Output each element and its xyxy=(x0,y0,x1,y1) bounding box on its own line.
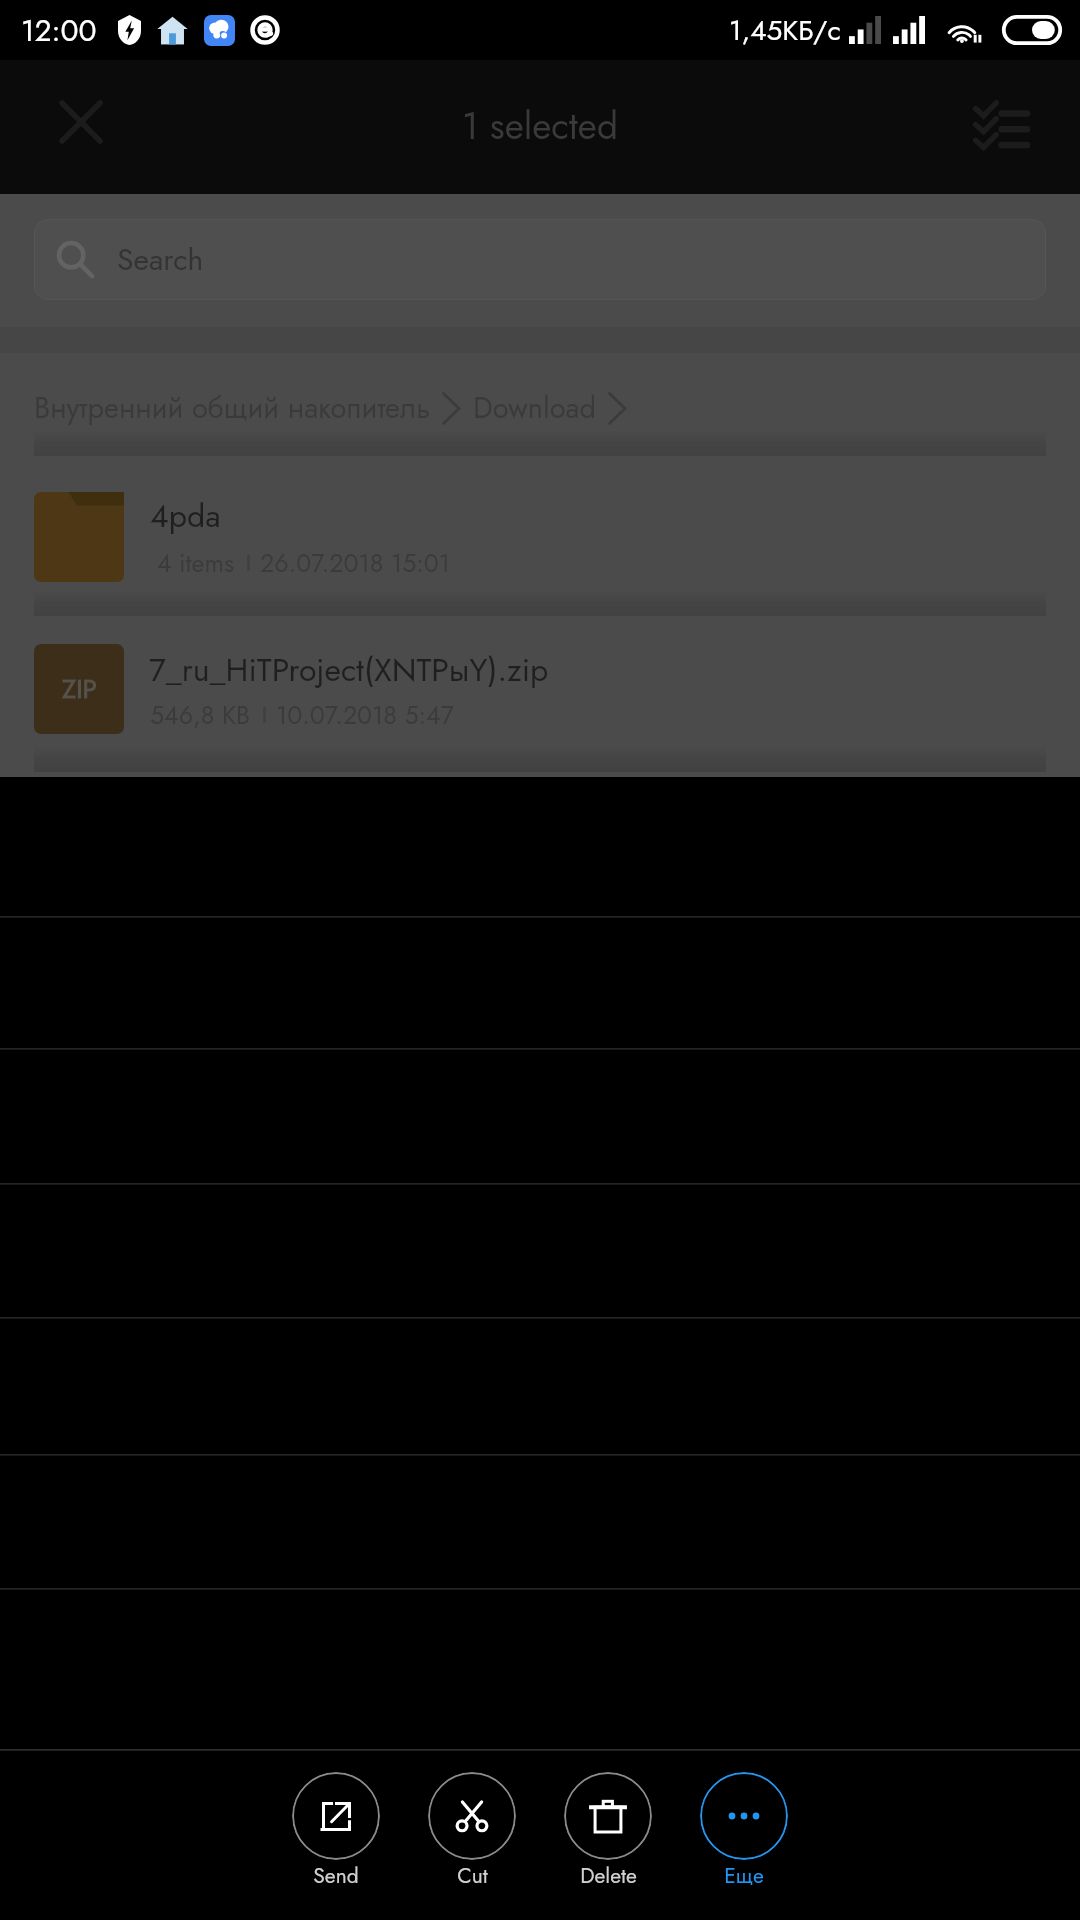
staticText: 546,8 KB xyxy=(150,697,251,733)
staticText: ZIP xyxy=(62,670,97,708)
staticText: Send xyxy=(313,1861,359,1891)
staticText: 10.07.2018 5:47 xyxy=(276,697,454,733)
button[interactable]: Cut xyxy=(404,1772,540,1891)
staticText: 7_ru_HiTProject(XNTPыY).zip xyxy=(149,647,549,693)
staticText: Download xyxy=(473,387,597,429)
button[interactable]: ZIP xyxy=(0,628,1080,748)
staticText: Delete xyxy=(580,1861,637,1891)
staticText: 1 selected xyxy=(462,99,618,152)
button[interactable]: Send xyxy=(268,1772,404,1891)
staticText: Внутренний общий накопитель xyxy=(34,387,431,429)
button[interactable]: Select all xyxy=(956,80,1044,168)
staticText: Search xyxy=(117,238,204,281)
button[interactable]: Еще xyxy=(676,1772,812,1891)
button[interactable]: Delete xyxy=(540,1772,676,1891)
staticText: Cut xyxy=(457,1861,488,1891)
staticText: 4 items xyxy=(157,545,235,581)
button[interactable]: Close selection xyxy=(37,78,125,166)
staticText: 12:00 xyxy=(21,9,97,52)
staticText: 1,45КБ/c xyxy=(729,10,841,50)
staticText: 26.07.2018 15:01 xyxy=(260,545,450,581)
staticText: Еще xyxy=(724,1861,764,1891)
button[interactable]: 4pda xyxy=(0,476,1080,596)
staticText: 4pda xyxy=(150,493,221,539)
